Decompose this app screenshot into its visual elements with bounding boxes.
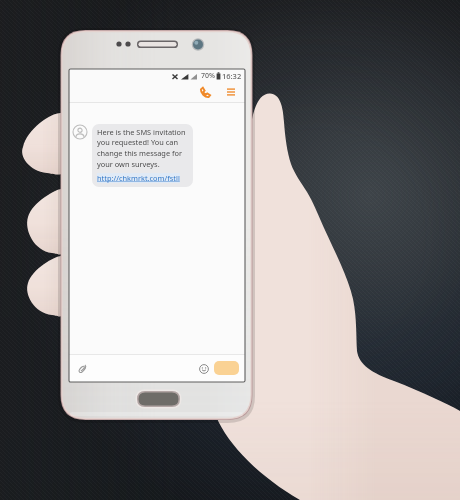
- staticText: http://chkmrkt.com/fstll: [97, 173, 180, 183]
- button[interactable]: Menu: [222, 83, 240, 101]
- staticText: Here is the SMS invitation you requested…: [97, 127, 186, 169]
- staticText: 16:32: [222, 71, 242, 81]
- button[interactable]: Emoji: [197, 362, 210, 375]
- button[interactable]: Attach: [75, 361, 89, 375]
- staticText: 70%: [201, 71, 215, 81]
- button[interactable]: Here is the SMS invitation you requested…: [92, 124, 193, 187]
- button[interactable]: Call: [196, 83, 214, 101]
- button[interactable]: Send: [214, 361, 239, 375]
